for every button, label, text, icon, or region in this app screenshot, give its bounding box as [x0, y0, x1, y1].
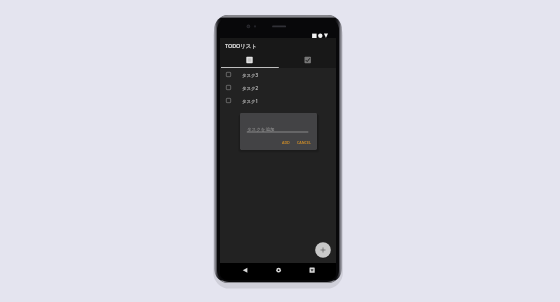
button[interactable]: Recents: [297, 263, 336, 280]
button[interactable]: Add task: [315, 242, 331, 258]
staticText: タスク3: [242, 72, 258, 78]
staticText: ADD: [282, 140, 290, 145]
staticText: タスク2: [242, 85, 258, 91]
button[interactable]: Todo tab: [220, 54, 278, 68]
button[interactable]: タスク1: [220, 94, 336, 107]
button[interactable]: タスク2: [220, 81, 336, 94]
staticText: タスクを追加: [247, 127, 275, 133]
button[interactable]: Back: [220, 263, 258, 280]
button[interactable]: ADD: [279, 138, 293, 147]
staticText: TODOリスト: [225, 42, 257, 49]
button[interactable]: Home: [258, 263, 297, 280]
staticText: CANCEL: [297, 140, 311, 145]
button[interactable]: Done tab: [278, 54, 336, 68]
staticText: タスク1: [242, 98, 258, 104]
button[interactable]: タスク3: [220, 68, 336, 81]
button[interactable]: CANCEL: [294, 138, 314, 147]
